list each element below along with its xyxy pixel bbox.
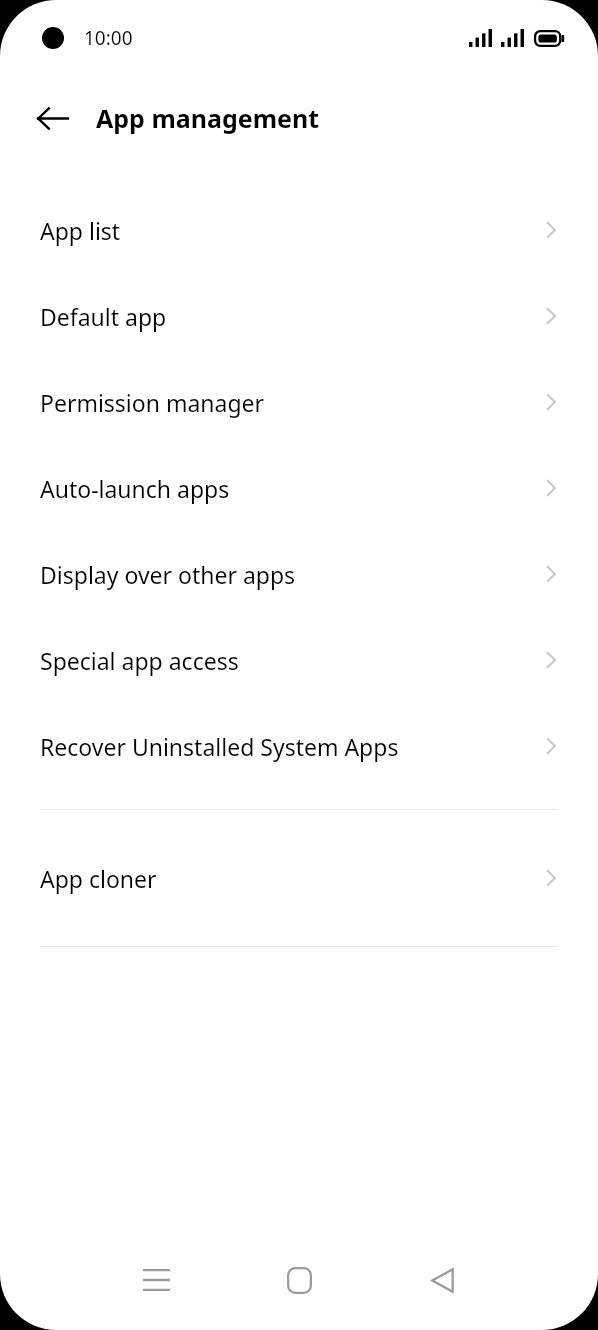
button[interactable]: Back	[404, 1242, 480, 1318]
button[interactable]: Default app	[0, 273, 598, 359]
button[interactable]: Permission manager	[0, 359, 598, 445]
button[interactable]: Recent apps	[118, 1242, 194, 1318]
staticText: 10:00	[84, 25, 133, 51]
staticText: App cloner	[40, 863, 544, 894]
staticText: App list	[40, 215, 544, 246]
button[interactable]: Home	[261, 1242, 337, 1318]
button[interactable]: Recover Uninstalled System Apps	[0, 703, 598, 789]
button[interactable]: App list	[0, 187, 598, 273]
staticText: App management	[96, 101, 320, 135]
button[interactable]: Back	[24, 90, 80, 146]
button[interactable]: Special app access	[0, 617, 598, 703]
staticText: Special app access	[40, 645, 544, 676]
staticText: Recover Uninstalled System Apps	[40, 731, 544, 762]
staticText: Default app	[40, 301, 544, 332]
staticText: Permission manager	[40, 387, 544, 418]
button[interactable]: Auto-launch apps	[0, 445, 598, 531]
button[interactable]: App cloner	[0, 835, 598, 921]
staticText: Auto-launch apps	[40, 473, 544, 504]
staticText: Display over other apps	[40, 559, 544, 590]
button[interactable]: Display over other apps	[0, 531, 598, 617]
